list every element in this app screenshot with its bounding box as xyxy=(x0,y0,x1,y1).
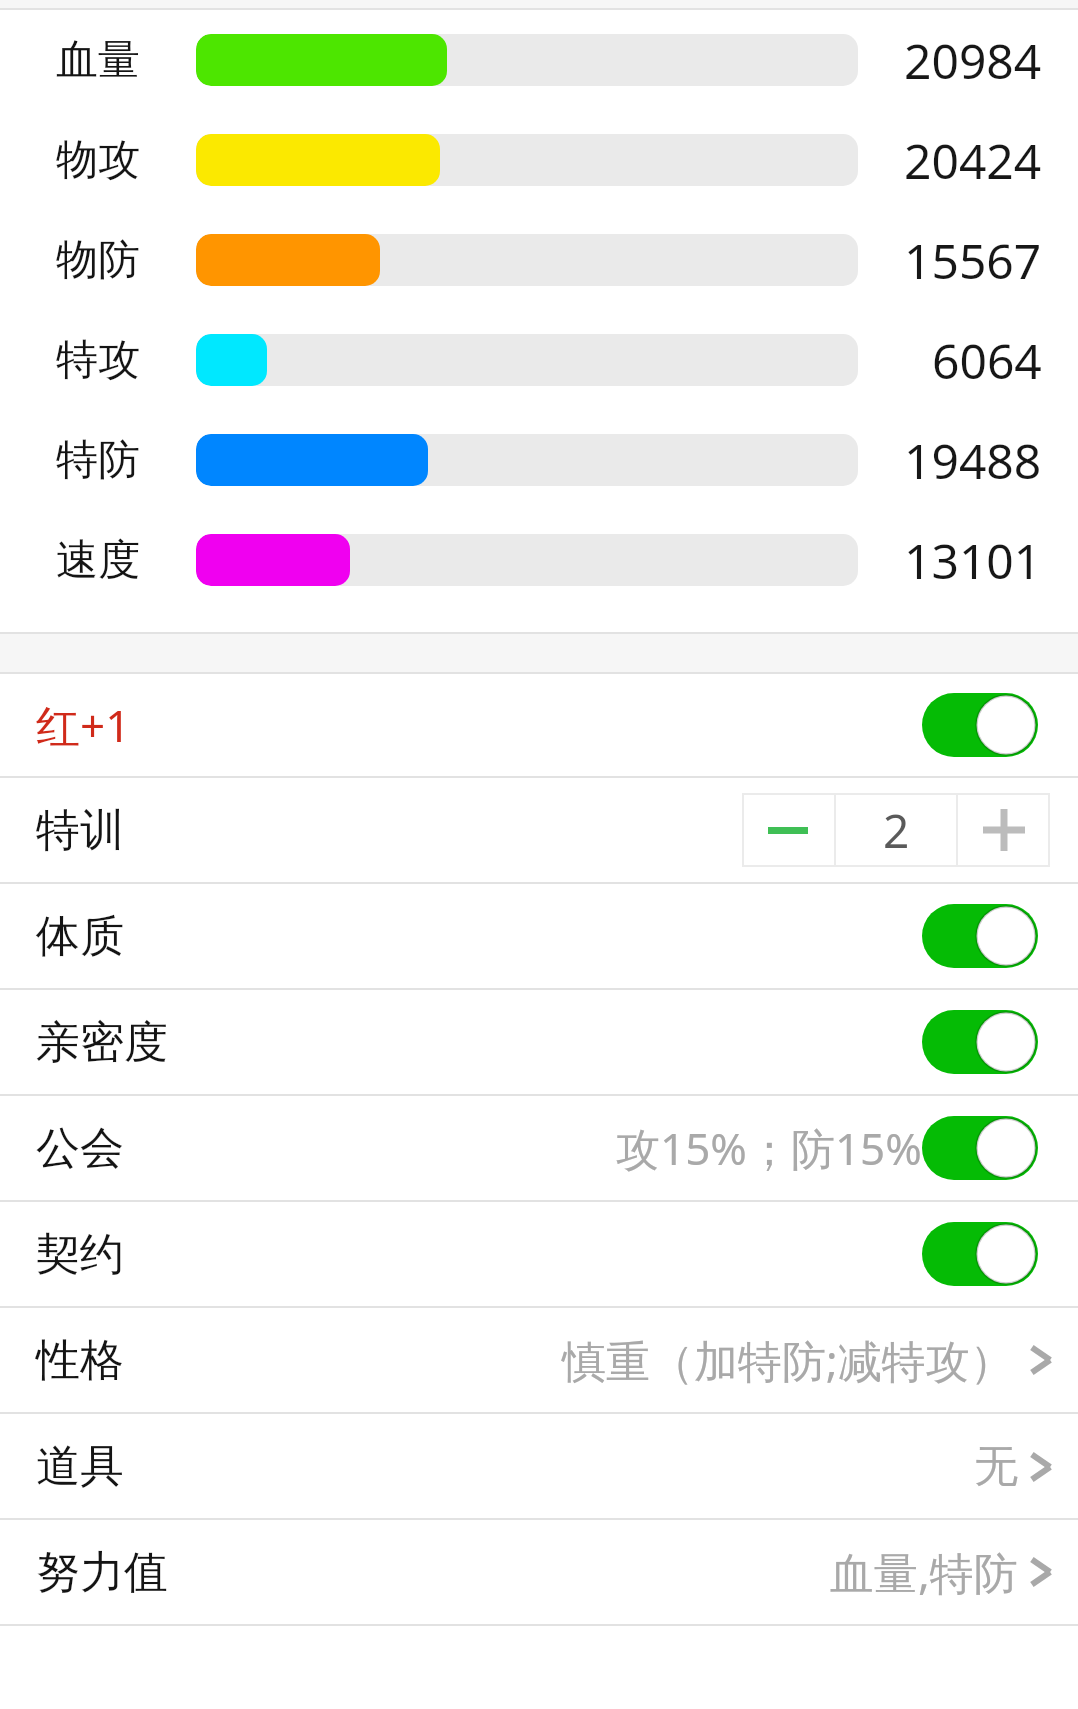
staticText: 19488 xyxy=(904,428,1042,493)
staticText: 无 xyxy=(974,1439,1018,1494)
button[interactable]: Toggle xyxy=(922,1010,1038,1074)
button[interactable]: 物攻 xyxy=(0,110,1078,210)
staticText: 道具 xyxy=(36,1439,124,1494)
button[interactable]: 体质 xyxy=(0,884,1078,988)
button[interactable]: Decrease xyxy=(742,793,834,867)
button[interactable]: Toggle xyxy=(922,904,1038,968)
staticText: 努力值 xyxy=(36,1545,168,1600)
button[interactable]: 红+1 xyxy=(0,674,1078,776)
button[interactable]: 速度 xyxy=(0,510,1078,610)
button[interactable]: 公会 xyxy=(0,1096,1078,1200)
staticText: 特攻 xyxy=(56,334,140,387)
staticText: 契约 xyxy=(36,1227,124,1282)
staticText: 2 xyxy=(883,799,910,862)
button[interactable]: 物防 xyxy=(0,210,1078,310)
button[interactable]: 性格 xyxy=(0,1308,1078,1412)
staticText: 血量 xyxy=(56,34,140,87)
button[interactable]: 特防 xyxy=(0,410,1078,510)
staticText: 攻15%；防15% xyxy=(616,1118,922,1178)
staticText: 13101 xyxy=(904,528,1042,593)
staticText: 特训 xyxy=(36,803,124,858)
staticText: 体质 xyxy=(36,909,124,964)
staticText: 亲密度 xyxy=(36,1015,168,1070)
button[interactable]: 特攻 xyxy=(0,310,1078,410)
button[interactable]: Toggle xyxy=(922,1222,1038,1286)
button[interactable]: Toggle xyxy=(922,1116,1038,1180)
staticText: 公会 xyxy=(36,1121,124,1176)
button[interactable]: Increase xyxy=(958,793,1050,867)
staticText: 15567 xyxy=(904,228,1042,293)
staticText: 物攻 xyxy=(56,134,140,187)
staticText: 速度 xyxy=(56,534,140,587)
button[interactable]: 努力值 xyxy=(0,1520,1078,1624)
button[interactable]: Toggle xyxy=(922,693,1038,757)
staticText: 红+1 xyxy=(36,695,131,755)
button[interactable]: 契约 xyxy=(0,1202,1078,1306)
staticText: 血量,特防 xyxy=(830,1542,1018,1602)
staticText: 物防 xyxy=(56,234,140,287)
button[interactable]: 道具 xyxy=(0,1414,1078,1518)
button[interactable]: 亲密度 xyxy=(0,990,1078,1094)
staticText: 6064 xyxy=(932,328,1042,393)
button[interactable]: 血量 xyxy=(0,10,1078,110)
staticText: 20424 xyxy=(904,128,1042,193)
staticText: 20984 xyxy=(904,28,1042,93)
staticText: 性格 xyxy=(36,1333,124,1388)
staticText: 慎重（加特防;减特攻） xyxy=(562,1330,1014,1390)
staticText: 特防 xyxy=(56,434,140,487)
